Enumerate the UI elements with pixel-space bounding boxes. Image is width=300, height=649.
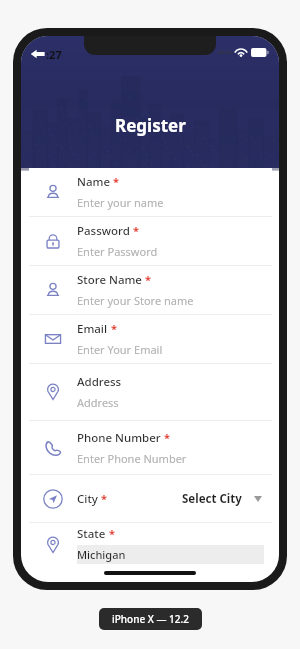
staticText: * [111, 321, 117, 336]
staticText: Enter Phone Number [77, 451, 187, 466]
staticText: * [164, 430, 170, 445]
staticText: * [101, 491, 107, 506]
staticText: Enter your Store name [77, 293, 194, 308]
staticText: Enter your name [77, 195, 164, 210]
button[interactable]: Password [29, 217, 272, 265]
staticText: Address [77, 395, 119, 410]
staticText: Enter Password [77, 244, 158, 259]
staticText: Phone Number [77, 430, 161, 446]
staticText: * [113, 174, 119, 189]
staticText: Store Name [77, 272, 142, 288]
button[interactable]: Address [29, 364, 272, 420]
button[interactable]: City [29, 475, 272, 522]
button[interactable]: iPhone X — 12.2 [99, 608, 202, 630]
button[interactable]: Name [29, 168, 272, 216]
button[interactable]: Phone Number [29, 421, 272, 474]
button[interactable]: Back [29, 46, 62, 62]
staticText: Enter Your Email [77, 342, 163, 357]
staticText: :27 [46, 47, 62, 62]
button[interactable]: Email [29, 315, 272, 363]
staticText: Password [77, 223, 130, 239]
staticText: Select City [182, 491, 242, 507]
button[interactable]: Store Name [29, 266, 272, 314]
staticText: City [77, 491, 98, 507]
staticText: * [133, 223, 139, 238]
staticText: Address [77, 374, 122, 390]
staticText: Name [77, 174, 110, 190]
staticText: iPhone X — 12.2 [112, 612, 189, 626]
staticText: State [77, 526, 106, 542]
staticText: * [109, 526, 115, 541]
staticText: Register [115, 114, 186, 137]
staticText: * [145, 272, 151, 287]
button[interactable]: State [29, 523, 272, 567]
staticText: Michigan [77, 547, 126, 562]
staticText: Email [77, 321, 108, 337]
